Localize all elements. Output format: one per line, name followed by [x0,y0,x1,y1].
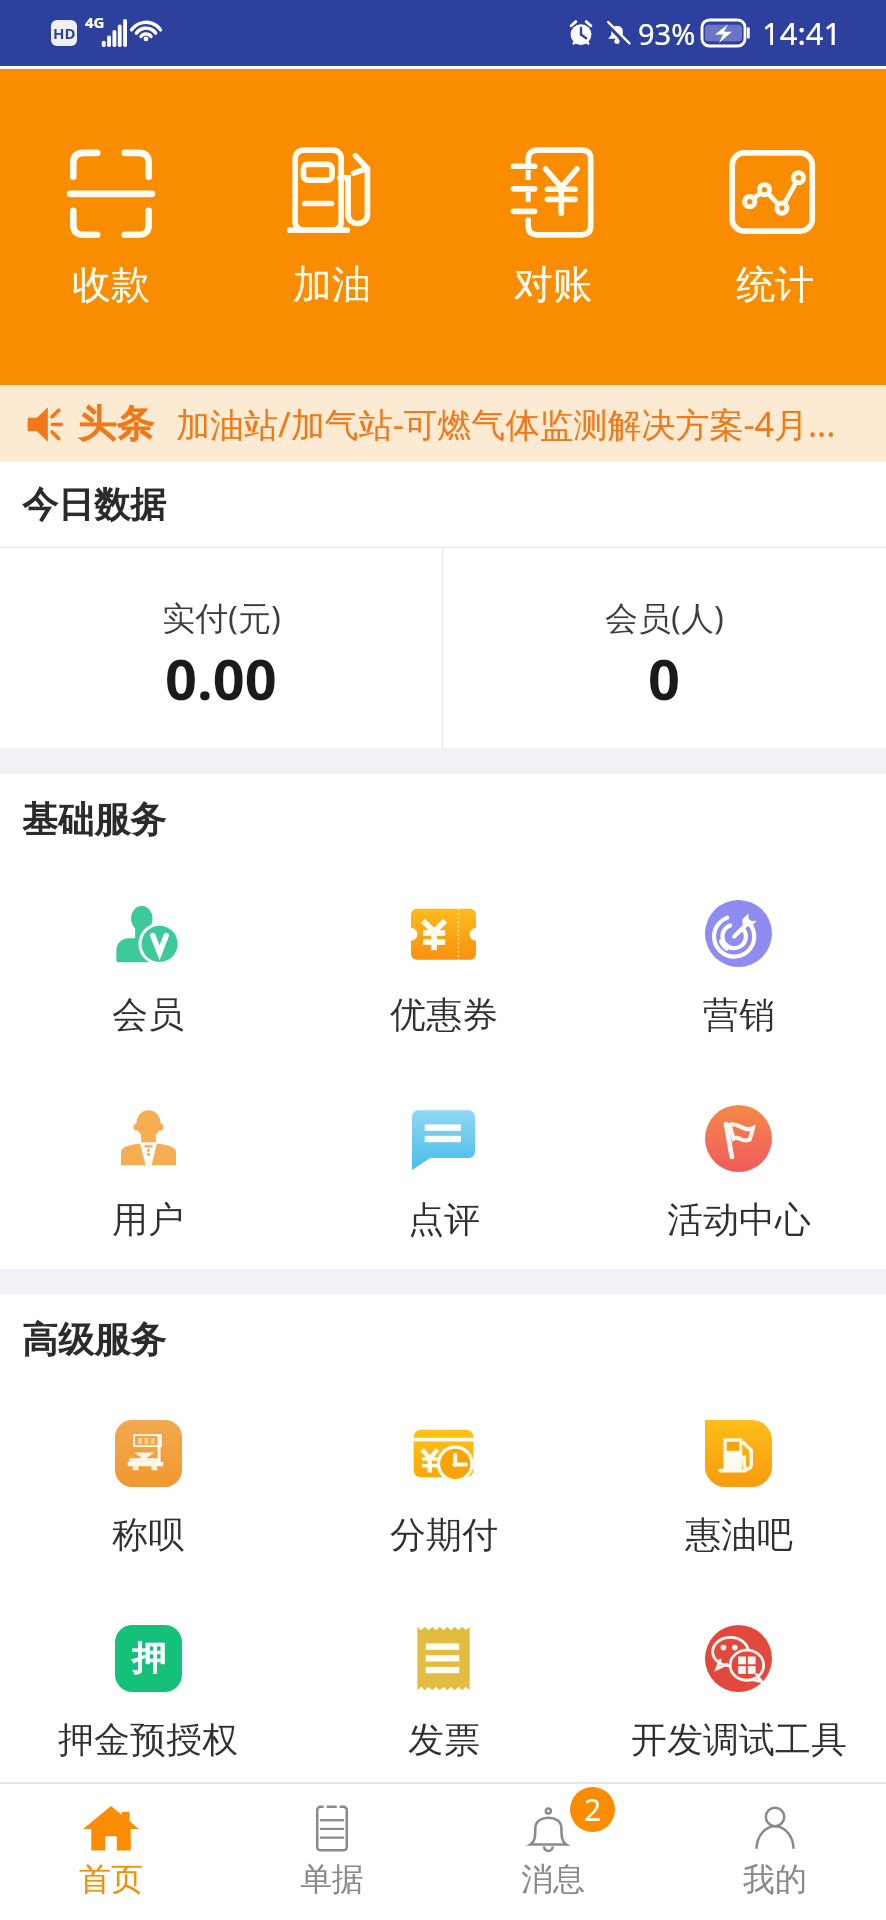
staticText: 会员 [112,992,184,1037]
staticText: 收款 [72,260,150,309]
staticText: 优惠券 [390,992,498,1037]
staticText: 实付(元) [162,595,281,640]
button[interactable]: 优惠券 [296,900,591,1037]
staticText: HD [53,23,76,43]
button[interactable]: 我的 [664,1784,886,1920]
button[interactable]: 2 [442,1784,664,1920]
staticText: 高级服务 [22,1317,166,1362]
button[interactable]: 收款 [0,138,221,317]
staticText: 分期付 [390,1512,498,1557]
button[interactable]: 点评 [296,1105,591,1242]
button[interactable]: 发票 [296,1625,591,1762]
button[interactable]: 加油 [221,138,442,317]
staticText: 惠油吧 [685,1512,793,1557]
button[interactable]: 活动中心 [591,1105,886,1242]
button[interactable]: 分期付 [296,1420,591,1557]
staticText: 押 [132,1637,166,1680]
button[interactable]: 押 [0,1625,296,1762]
button[interactable]: 用户 [0,1105,296,1242]
staticText: 营销 [703,992,775,1037]
button[interactable]: 会员(人) [443,548,886,748]
button[interactable]: 单据 [221,1784,442,1920]
staticText: 加油站/加气站-可燃气体监测解决方案-4月... [176,401,836,447]
button[interactable]: 开发调试工具 [591,1625,886,1762]
staticText: 今日数据 [22,482,166,527]
button[interactable]: 统计 [664,138,886,317]
staticText: 0 [648,640,681,716]
button[interactable]: 惠油吧 [591,1420,886,1557]
staticText: 93% [638,14,696,53]
staticText: 单据 [300,1859,364,1899]
button[interactable]: 称呗 [0,1420,296,1557]
staticText: 首页 [79,1859,143,1899]
button[interactable]: 头条 [0,385,886,462]
staticText: 活动中心 [667,1197,811,1242]
staticText: 基础服务 [22,797,166,842]
staticText: 4G [85,12,105,32]
staticText: 开发调试工具 [631,1717,847,1762]
staticText: 我的 [743,1859,807,1899]
staticText: 押金预授权 [58,1717,238,1762]
staticText: 0.00 [165,640,277,716]
staticText: 消息 [521,1859,585,1899]
staticText: 发票 [408,1717,480,1762]
staticText: 对账 [514,260,592,309]
staticText: 点评 [408,1197,480,1242]
staticText: 加油 [293,260,371,309]
staticText: 14:41 [762,12,842,54]
button[interactable]: 营销 [591,900,886,1037]
staticText: 头条 [78,400,154,448]
staticText: 统计 [736,260,814,309]
staticText: 2 [584,1789,602,1830]
staticText: 会员(人) [605,595,724,640]
button[interactable]: 会员 [0,900,296,1037]
staticText: 用户 [112,1197,184,1242]
staticText: 称呗 [112,1512,184,1557]
button[interactable]: 首页 [0,1784,221,1920]
button[interactable]: 实付(元) [0,548,442,748]
button[interactable]: 对账 [442,138,664,317]
